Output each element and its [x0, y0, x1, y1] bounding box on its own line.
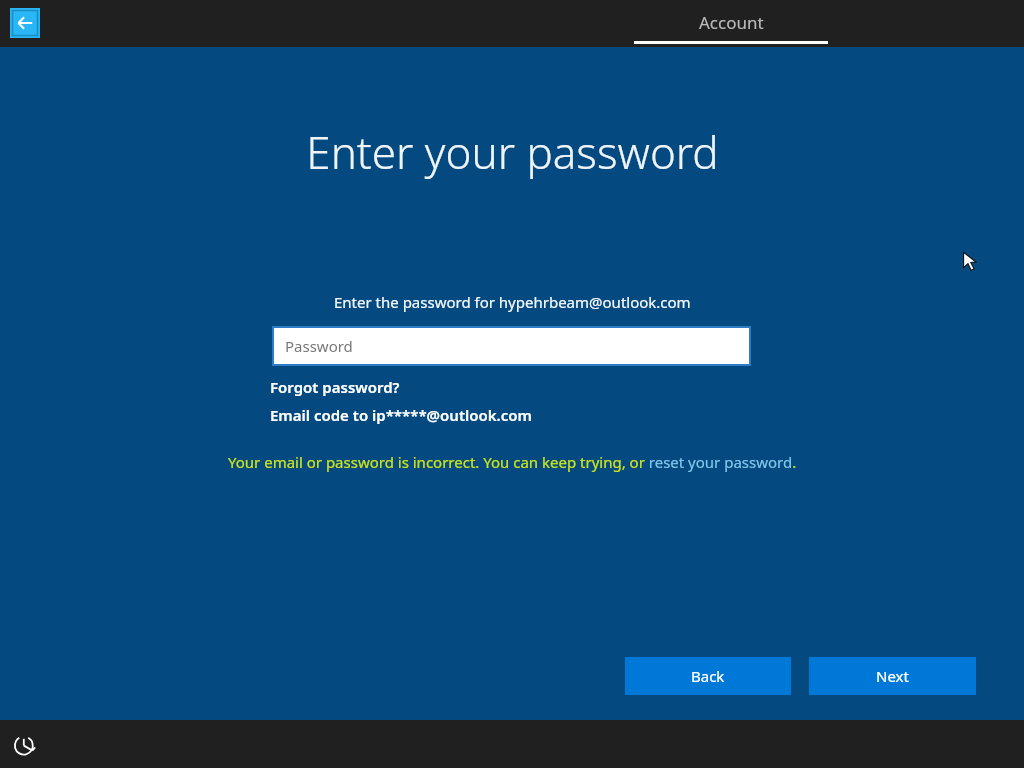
button[interactable]: Email code to ip*****@outlook.com	[270, 403, 532, 427]
staticText: Next	[876, 666, 909, 686]
button[interactable]: Back	[10, 8, 40, 38]
staticText: Enter the password for hypehrbeam@outloo…	[334, 292, 691, 312]
staticText: Back	[691, 666, 725, 686]
staticText: Account	[699, 11, 764, 34]
button[interactable]: Back	[625, 657, 791, 695]
staticText: Email code to ip*****@outlook.com	[270, 405, 532, 425]
button[interactable]: Ease of access	[10, 730, 40, 760]
button[interactable]: Password	[274, 328, 749, 364]
staticText: Password	[285, 336, 353, 356]
staticText: Enter your password	[306, 122, 719, 182]
staticText: Your email or password is incorrect. You…	[228, 452, 797, 472]
button[interactable]: Account	[634, 0, 828, 47]
button[interactable]: Next	[809, 657, 976, 695]
staticText: Forgot password?	[270, 377, 400, 397]
button[interactable]: Forgot password?	[270, 375, 400, 399]
